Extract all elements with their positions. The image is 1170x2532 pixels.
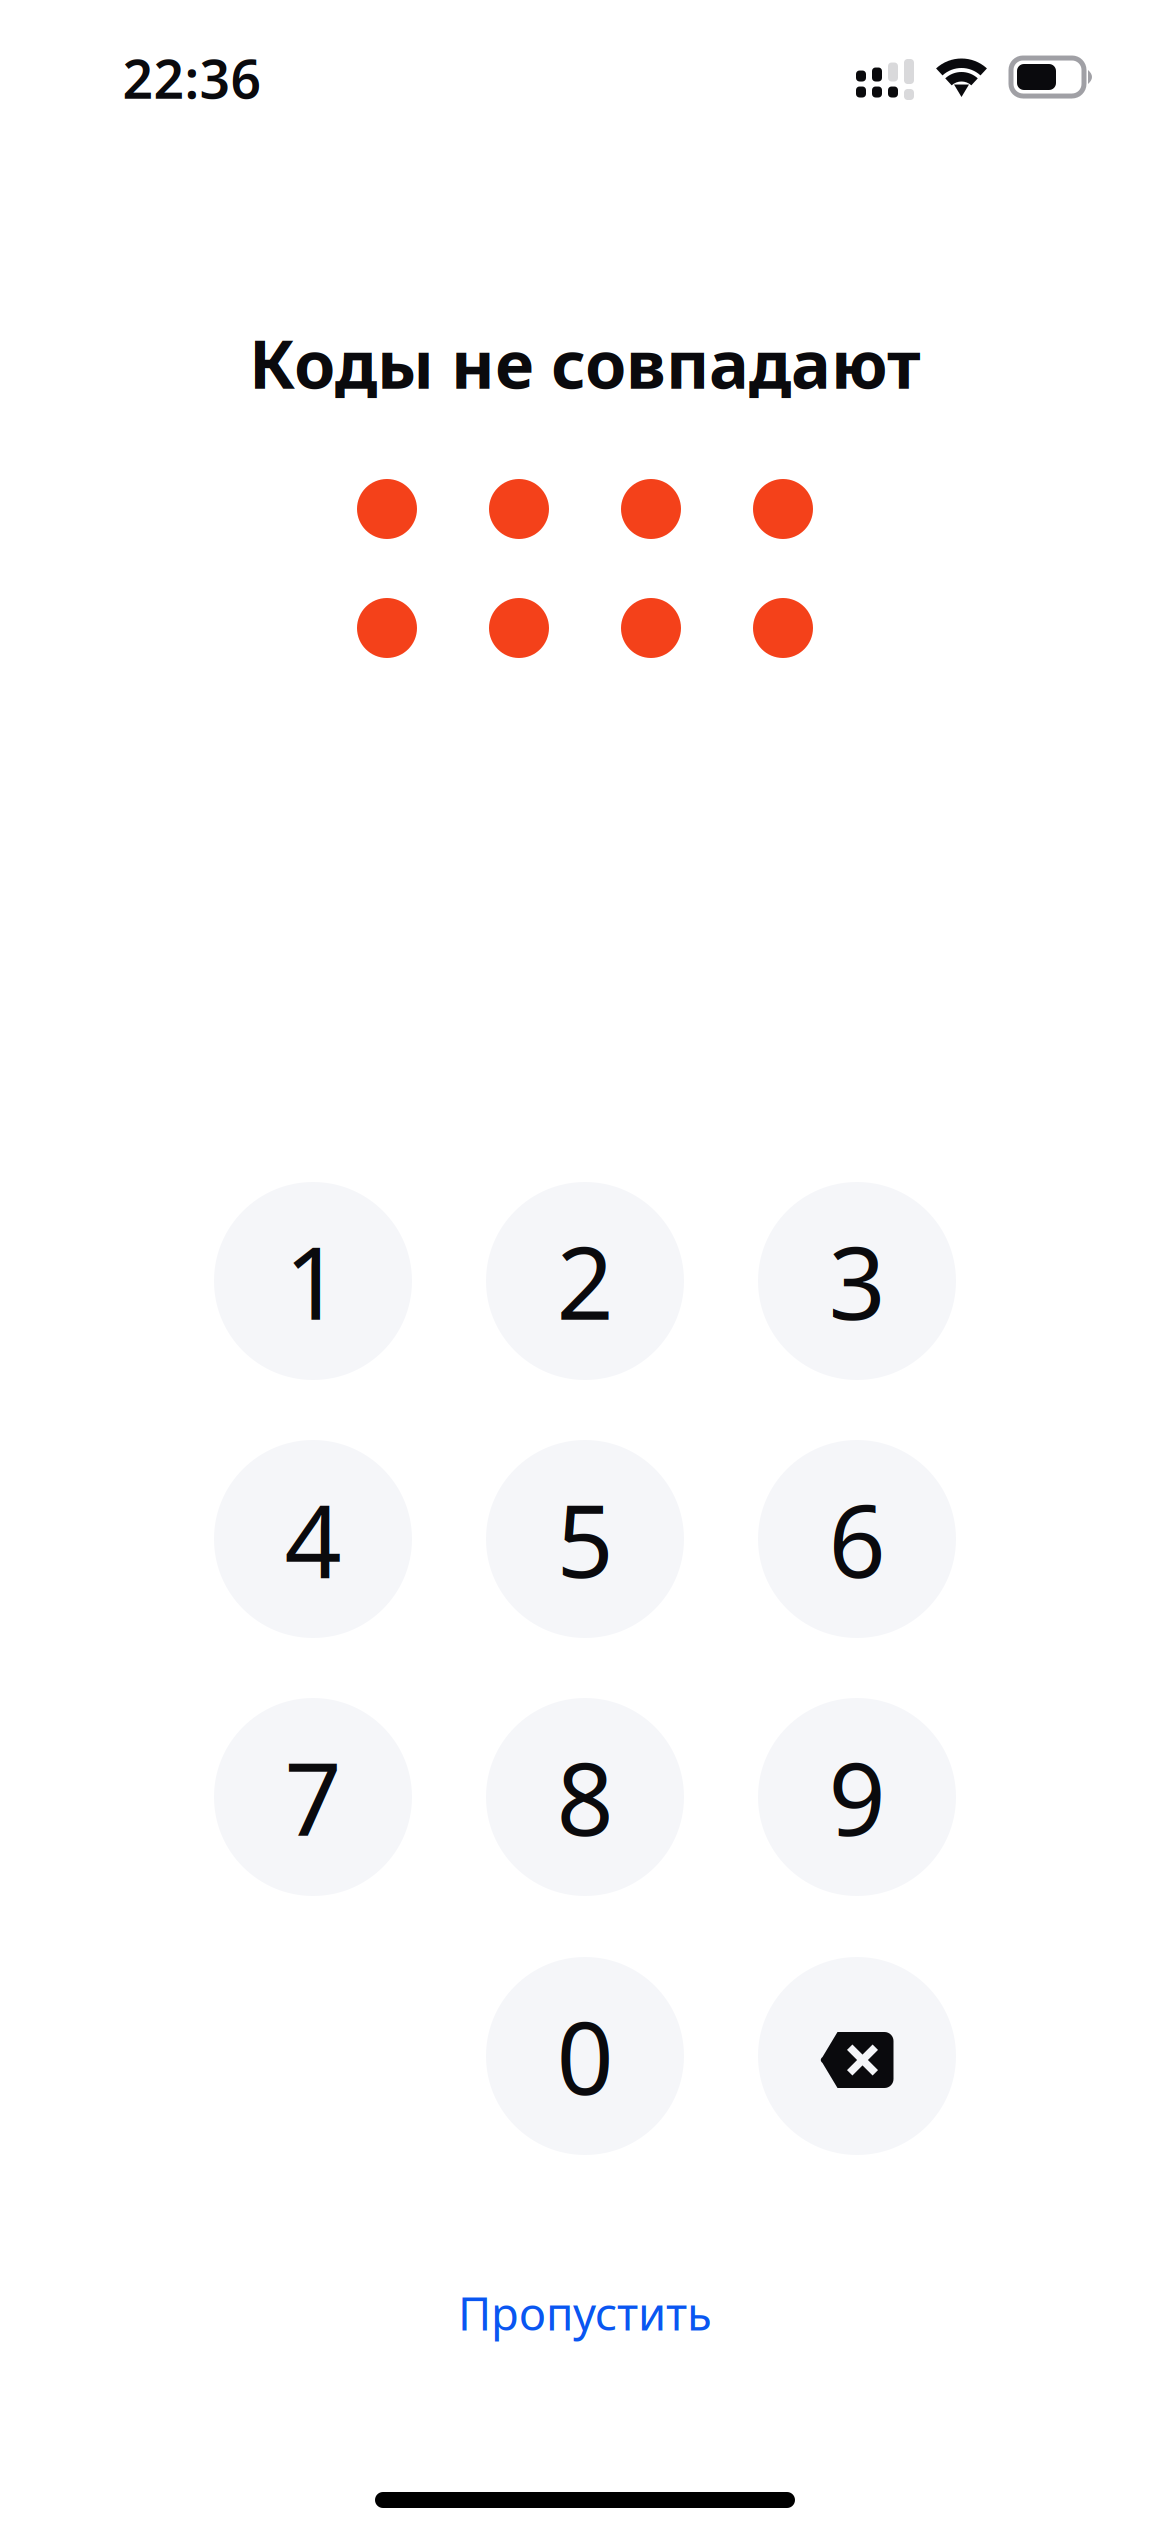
staticText: 5 (556, 1473, 613, 1605)
button[interactable]: Пропустить (385, 2268, 785, 2358)
staticText: Коды не совпадают (249, 319, 921, 407)
staticText: 22:36 (122, 43, 261, 113)
staticText: Пропустить (458, 2283, 712, 2343)
button[interactable]: 1 (214, 1182, 412, 1380)
staticText: 4 (284, 1473, 341, 1605)
button[interactable]: 7 (214, 1698, 412, 1896)
staticText: 7 (284, 1731, 341, 1863)
staticText: 2 (556, 1215, 613, 1347)
button[interactable]: 4 (214, 1440, 412, 1638)
button[interactable]: 0 (486, 1957, 684, 2155)
staticText: 3 (828, 1215, 885, 1347)
button[interactable]: 5 (486, 1440, 684, 1638)
button[interactable]: Delete (758, 1957, 956, 2155)
staticText: 8 (556, 1731, 613, 1863)
staticText: 6 (828, 1473, 885, 1605)
staticText: 9 (828, 1731, 885, 1863)
staticText: 0 (556, 1990, 613, 2122)
button[interactable]: 3 (758, 1182, 956, 1380)
button[interactable]: 6 (758, 1440, 956, 1638)
button[interactable]: 9 (758, 1698, 956, 1896)
staticText: 1 (284, 1215, 341, 1347)
button[interactable]: 8 (486, 1698, 684, 1896)
button[interactable]: 2 (486, 1182, 684, 1380)
